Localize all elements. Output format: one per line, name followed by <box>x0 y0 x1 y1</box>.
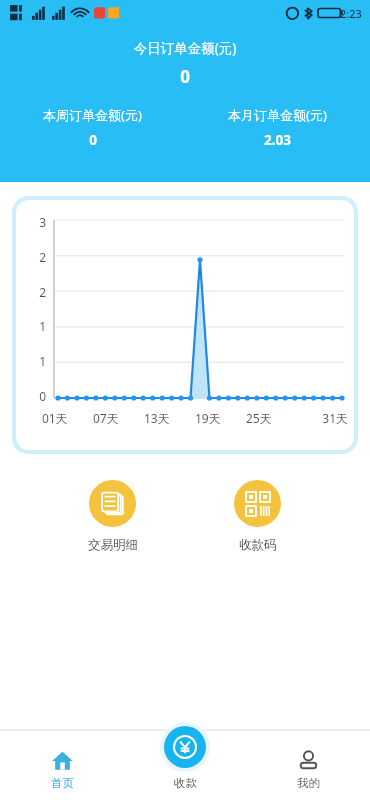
button[interactable]: 交易明细 <box>40 480 185 553</box>
staticText: 今日订单金额(元) <box>0 39 370 57</box>
staticText: 2.03 <box>264 131 291 149</box>
staticText: 19天 <box>195 410 246 426</box>
staticText: 0 <box>16 388 46 404</box>
button[interactable]: 首页 <box>0 749 124 790</box>
staticText: 收款 <box>174 776 197 790</box>
other: 收款 <box>164 726 206 768</box>
staticText: 1 <box>16 353 46 369</box>
staticText: 1 <box>16 318 46 334</box>
button[interactable]: 收款码 <box>185 480 330 553</box>
staticText: 01天 <box>42 410 93 426</box>
staticText: 2:23 <box>340 6 362 21</box>
staticText: 收款码 <box>239 537 277 553</box>
staticText: 本月订单金额(元) <box>228 106 327 124</box>
staticText: 首页 <box>51 776 74 790</box>
staticText: 本周订单金额(元) <box>43 106 142 124</box>
staticText: 0 <box>89 131 97 149</box>
staticText: 2 <box>16 284 46 300</box>
button[interactable]: 我的 <box>247 749 370 790</box>
staticText: 交易明细 <box>88 537 138 553</box>
staticText: 07天 <box>93 410 144 426</box>
button[interactable]: 收款 <box>160 722 210 800</box>
staticText: 31天 <box>297 410 348 426</box>
staticText: 3 <box>16 214 46 230</box>
staticText: 我的 <box>297 776 320 790</box>
staticText: 25天 <box>246 410 297 426</box>
staticText: 2 <box>16 249 46 265</box>
staticText: 13天 <box>144 410 195 426</box>
staticText: 0 <box>0 65 370 88</box>
